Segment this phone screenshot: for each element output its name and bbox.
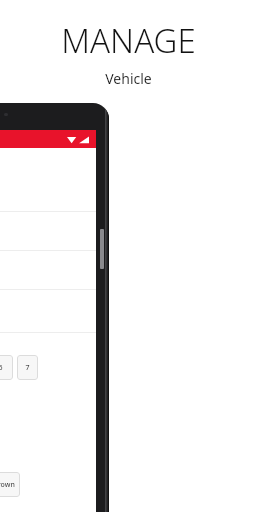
staticText: Brown (0, 480, 15, 490)
staticText: 6 (0, 363, 3, 373)
other: Power button (100, 229, 104, 269)
button[interactable]: 7 (17, 355, 38, 380)
staticText: Vehicle (105, 69, 152, 88)
staticText: 7 (25, 363, 30, 373)
button[interactable]: 6 (0, 355, 13, 380)
staticText: MANAGE (61, 18, 196, 63)
button[interactable]: Brown (0, 472, 20, 497)
